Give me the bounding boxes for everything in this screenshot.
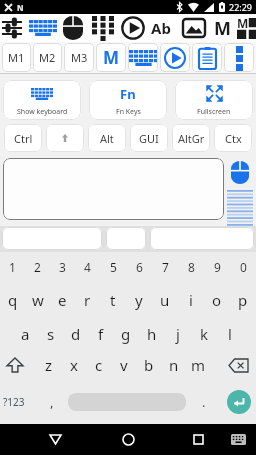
staticText: .: [202, 393, 206, 411]
button[interactable]: [128, 43, 158, 72]
staticText: o: [212, 290, 222, 310]
button[interactable]: [7, 350, 36, 380]
staticText: l: [228, 324, 232, 344]
button[interactable]: 3: [50, 252, 75, 282]
button[interactable]: M2: [33, 43, 62, 72]
button[interactable]: e: [50, 282, 75, 318]
staticText: g: [121, 324, 131, 344]
button[interactable]: n: [161, 350, 186, 380]
button[interactable]: [192, 43, 222, 72]
button[interactable]: [46, 124, 84, 152]
button[interactable]: a: [13, 318, 38, 350]
button[interactable]: Show keyboard: [3, 80, 81, 120]
button[interactable]: 4: [75, 252, 100, 282]
button[interactable]: [226, 424, 250, 455]
button[interactable]: M: [96, 43, 126, 72]
button[interactable]: r: [75, 282, 100, 318]
button[interactable]: j: [165, 318, 191, 350]
button[interactable]: k: [191, 318, 217, 350]
button[interactable]: [29, 14, 57, 42]
button[interactable]: 6: [126, 252, 152, 282]
button[interactable]: 1: [0, 252, 25, 282]
button[interactable]: M1: [2, 43, 31, 72]
staticText: j: [176, 324, 180, 344]
button[interactable]: [59, 14, 87, 42]
button[interactable]: t: [100, 282, 126, 318]
button[interactable]: [89, 14, 117, 42]
button[interactable]: [180, 14, 208, 42]
button[interactable]: M3: [64, 43, 94, 72]
button[interactable]: [0, 14, 26, 42]
button[interactable]: [227, 390, 251, 414]
button[interactable]: x: [61, 350, 86, 380]
staticText: Fn: [120, 85, 136, 103]
button[interactable]: [43, 424, 67, 455]
button[interactable]: [150, 227, 254, 250]
button[interactable]: g: [113, 318, 139, 350]
button[interactable]: ?123: [3, 380, 38, 424]
button[interactable]: Ab: [147, 14, 175, 42]
button[interactable]: [116, 424, 140, 455]
staticText: Alt: [100, 131, 114, 146]
button[interactable]: 7: [152, 252, 178, 282]
button[interactable]: [222, 380, 256, 424]
button[interactable]: 2: [25, 252, 50, 282]
button[interactable]: [3, 158, 224, 220]
button[interactable]: GUI: [130, 124, 168, 152]
button[interactable]: u: [152, 282, 178, 318]
button[interactable]: q: [0, 282, 25, 318]
button[interactable]: M: [208, 14, 236, 42]
button[interactable]: m: [186, 350, 211, 380]
button[interactable]: h: [139, 318, 165, 350]
button[interactable]: v: [111, 350, 136, 380]
staticText: Fullscreen: [197, 107, 231, 117]
button[interactable]: Ctx: [214, 124, 252, 152]
button[interactable]: b: [136, 350, 161, 380]
button[interactable]: w: [25, 282, 50, 318]
staticText: AltGr: [178, 131, 205, 146]
button[interactable]: y: [126, 282, 152, 318]
staticText: i: [189, 290, 193, 310]
button[interactable]: p: [230, 282, 256, 318]
button[interactable]: l: [217, 318, 243, 350]
button[interactable]: d: [63, 318, 88, 350]
button[interactable]: [68, 393, 186, 411]
button[interactable]: 8: [178, 252, 204, 282]
button[interactable]: 9: [204, 252, 230, 282]
staticText: x: [70, 355, 78, 375]
button[interactable]: .: [186, 380, 222, 424]
button[interactable]: i: [178, 282, 204, 318]
button[interactable]: Alt: [88, 124, 126, 152]
staticText: f: [98, 324, 104, 344]
staticText: Ctx: [225, 131, 242, 146]
staticText: c: [95, 355, 103, 375]
staticText: w: [32, 290, 44, 310]
button[interactable]: [224, 43, 254, 72]
button[interactable]: [160, 43, 190, 72]
button[interactable]: f: [88, 318, 113, 350]
button[interactable]: [186, 424, 210, 455]
button[interactable]: M: [233, 14, 256, 42]
button[interactable]: 0: [230, 252, 256, 282]
button[interactable]: ,: [38, 380, 66, 424]
button[interactable]: [211, 350, 249, 380]
button[interactable]: Fullscreen: [175, 80, 253, 120]
staticText: 7: [162, 259, 169, 275]
staticText: s: [47, 324, 55, 344]
button[interactable]: [227, 190, 253, 226]
button[interactable]: c: [86, 350, 111, 380]
button[interactable]: 5: [100, 252, 126, 282]
staticText: M3: [71, 50, 88, 65]
button[interactable]: [2, 227, 102, 250]
staticText: Fn Keys: [116, 107, 141, 117]
staticText: N: [17, 2, 24, 13]
button[interactable]: z: [36, 350, 61, 380]
button[interactable]: s: [38, 318, 63, 350]
button[interactable]: o: [204, 282, 230, 318]
button[interactable]: [106, 227, 146, 250]
button[interactable]: Ctrl: [4, 124, 42, 152]
button[interactable]: Fn: [89, 80, 167, 120]
staticText: 4: [84, 259, 91, 275]
button[interactable]: AltGr: [172, 124, 210, 152]
button[interactable]: [119, 14, 147, 42]
